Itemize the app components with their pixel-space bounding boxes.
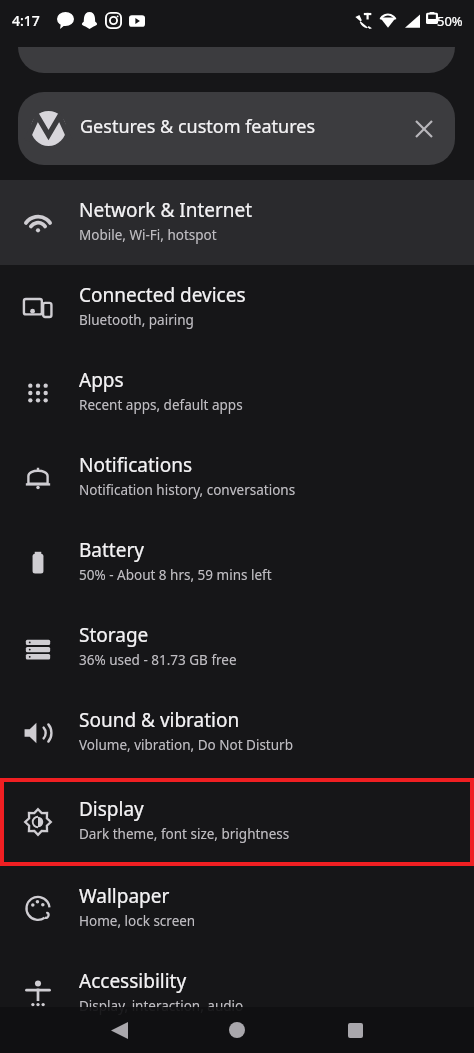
staticText: Notifications	[79, 452, 193, 478]
staticText: Accessibility	[79, 968, 187, 994]
staticText: Display, interaction, audio	[79, 997, 244, 1015]
button[interactable]: Connected devices	[0, 265, 474, 350]
staticText: 36% used - 81.73 GB free	[79, 651, 237, 669]
staticText: Mobile, Wi-Fi, hotspot	[79, 226, 217, 244]
button[interactable]: Sound & vibration	[0, 690, 474, 775]
staticText: 50%	[437, 12, 463, 30]
button[interactable]: Gestures & custom features	[18, 92, 455, 165]
staticText: Dark theme, font size, brightness	[79, 825, 290, 843]
button[interactable]: Accessibility	[0, 951, 474, 1036]
button[interactable]: Display	[0, 778, 474, 866]
button[interactable]: Apps	[0, 350, 474, 435]
button[interactable]: Dismiss	[407, 112, 441, 146]
staticText: Recent apps, default apps	[79, 396, 243, 414]
button[interactable]: Network & Internet	[0, 180, 474, 265]
button[interactable]: Back	[84, 1007, 154, 1053]
staticText: Bluetooth, pairing	[79, 311, 194, 329]
staticText: Gestures & custom features	[80, 114, 316, 139]
staticText: Network & Internet	[79, 197, 253, 223]
button[interactable]: Recents	[320, 1007, 390, 1053]
staticText: 50% - About 8 hrs, 59 mins left	[79, 566, 272, 584]
button[interactable]: Notifications	[0, 435, 474, 520]
staticText: Apps	[79, 367, 124, 393]
button[interactable]: Home	[202, 1007, 272, 1053]
staticText: Home, lock screen	[79, 912, 196, 930]
staticText: Battery	[79, 537, 144, 563]
button[interactable]: Battery	[0, 520, 474, 605]
staticText: 4:17	[12, 11, 40, 30]
staticText: Connected devices	[79, 282, 246, 308]
staticText: Storage	[79, 622, 149, 648]
button[interactable]: Storage	[0, 605, 474, 690]
staticText: Display	[79, 796, 144, 822]
staticText: Sound & vibration	[79, 707, 240, 733]
staticText: Wallpaper	[79, 883, 170, 909]
staticText: Volume, vibration, Do Not Disturb	[79, 736, 293, 754]
staticText: Notification history, conversations	[79, 481, 296, 499]
button[interactable]: Wallpaper	[0, 866, 474, 951]
